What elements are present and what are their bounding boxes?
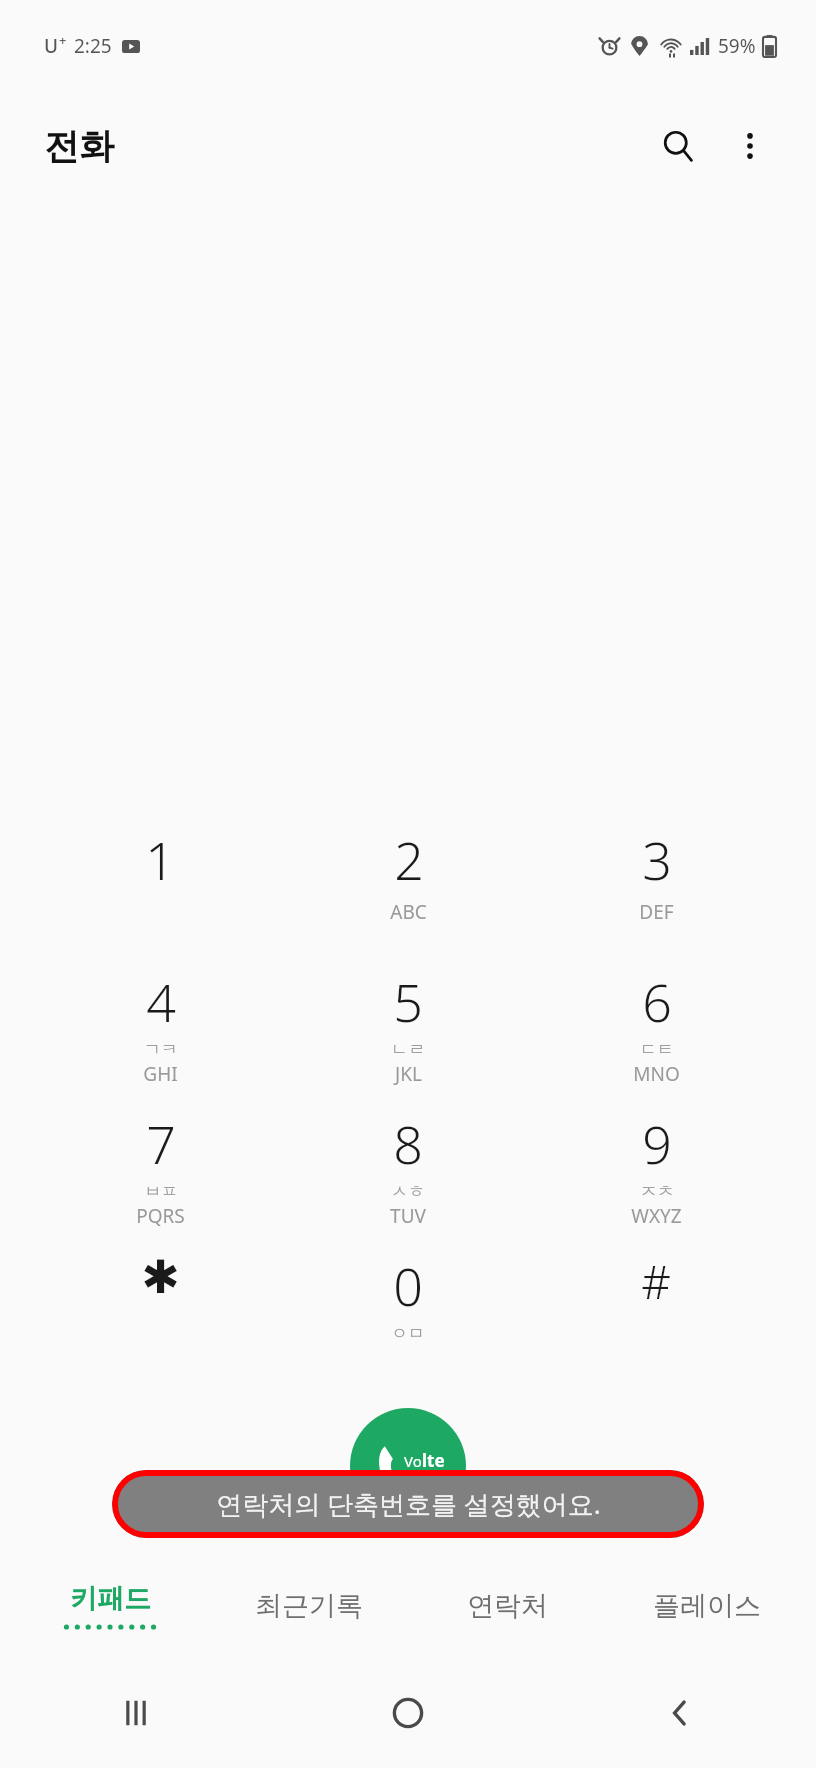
staticText: 키패드 — [70, 1582, 151, 1616]
staticText: ㄱㅋ — [144, 1039, 178, 1060]
staticText: 0 — [393, 1250, 423, 1321]
staticText: JKL — [395, 1061, 422, 1087]
staticText: ㅈㅊ — [640, 1181, 674, 1202]
staticText: 연락처 — [467, 1589, 548, 1623]
staticText: 59% — [718, 33, 756, 59]
staticText: 7 — [146, 1108, 176, 1179]
staticText: ㅇㅁ — [391, 1323, 425, 1344]
staticText: DEF — [639, 899, 674, 925]
button[interactable]: # — [532, 1238, 780, 1380]
staticText: 6 — [642, 966, 672, 1037]
staticText: U — [44, 33, 59, 59]
staticText: 2:25 — [74, 33, 112, 59]
staticText: 1 — [145, 824, 175, 895]
button[interactable]: 최근 앱 — [0, 1658, 272, 1768]
button[interactable]: 최근기록 — [209, 1554, 408, 1658]
button[interactable]: 플레이스 — [607, 1554, 806, 1658]
staticText: ㄷㅌ — [640, 1039, 674, 1060]
staticText: 플레이스 — [653, 1589, 761, 1623]
staticText: 9 — [642, 1108, 672, 1179]
button[interactable]: 검색 — [642, 110, 714, 182]
staticText: Vo — [404, 1451, 422, 1471]
button[interactable]: 7 — [36, 1096, 284, 1238]
staticText: 최근기록 — [255, 1589, 363, 1623]
staticText: PQRS — [136, 1203, 185, 1229]
staticText: GHI — [143, 1061, 178, 1087]
staticText: 전화 — [44, 124, 114, 168]
button[interactable]: 6 — [532, 954, 780, 1096]
staticText: 8 — [393, 1108, 423, 1179]
button[interactable]: 홈 — [272, 1658, 544, 1768]
button[interactable]: 더보기 — [714, 110, 786, 182]
staticText: 3 — [642, 824, 672, 895]
staticText: ABC — [390, 899, 427, 925]
staticText: WXYZ — [631, 1203, 682, 1229]
staticText: + — [59, 31, 67, 49]
button[interactable]: 5 — [284, 954, 532, 1096]
button[interactable]: 키패드 — [10, 1554, 209, 1658]
staticText: ㄴㄹ — [391, 1039, 425, 1060]
staticText: ㅂㅍ — [144, 1181, 178, 1202]
button[interactable]: 8 — [284, 1096, 532, 1238]
staticText: 5 — [393, 966, 423, 1037]
staticText: MNO — [633, 1061, 680, 1087]
button[interactable]: 4 — [36, 954, 284, 1096]
button[interactable]: ✱ — [36, 1238, 284, 1380]
staticText: TUV — [390, 1203, 426, 1229]
button[interactable]: 뒤로 — [544, 1658, 816, 1768]
staticText: 연락처의 단축번호를 설정했어요. — [216, 1486, 601, 1522]
button[interactable]: 2 — [284, 812, 532, 954]
button[interactable]: 0 — [284, 1238, 532, 1380]
button[interactable]: 연락처 — [408, 1554, 607, 1658]
staticText: 4 — [146, 966, 176, 1037]
button[interactable]: 통화 — [350, 1408, 466, 1524]
button[interactable]: 3 — [532, 812, 780, 954]
button[interactable]: 1 — [36, 812, 284, 954]
staticText: # — [641, 1250, 671, 1313]
staticText: ㅅㅎ — [391, 1181, 425, 1202]
staticText: lte — [422, 1449, 445, 1472]
button[interactable]: 9 — [532, 1096, 780, 1238]
staticText: 2 — [394, 824, 424, 895]
staticText: ✱ — [141, 1250, 180, 1304]
